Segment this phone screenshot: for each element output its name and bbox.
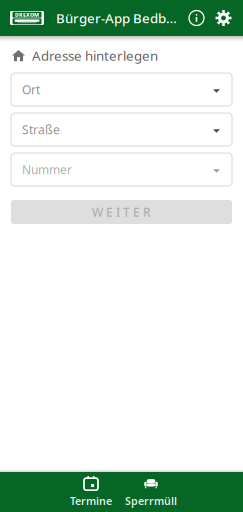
staticText: DREXOM: [15, 11, 39, 18]
button[interactable]: Termine: [65, 472, 117, 512]
button[interactable]: Settings: [210, 2, 237, 34]
staticText: Nummer: [22, 161, 72, 177]
button[interactable]: Nummer: [11, 153, 232, 186]
button[interactable]: Straße: [11, 113, 232, 146]
staticText: Straße: [22, 121, 60, 137]
button[interactable]: Info: [183, 2, 210, 34]
button[interactable]: Sperrmüll: [125, 472, 177, 512]
staticText: Termine: [70, 494, 112, 508]
button[interactable]: Ort: [11, 73, 232, 106]
button[interactable]: W E I T E R: [11, 200, 232, 224]
staticText: W E I T E R: [92, 204, 151, 220]
staticText: Bürger-App Bedb…: [56, 9, 177, 27]
staticText: Adresse hinterlegen: [32, 47, 158, 64]
staticText: Ort: [22, 81, 40, 97]
staticText: Sperrmüll: [125, 494, 177, 508]
